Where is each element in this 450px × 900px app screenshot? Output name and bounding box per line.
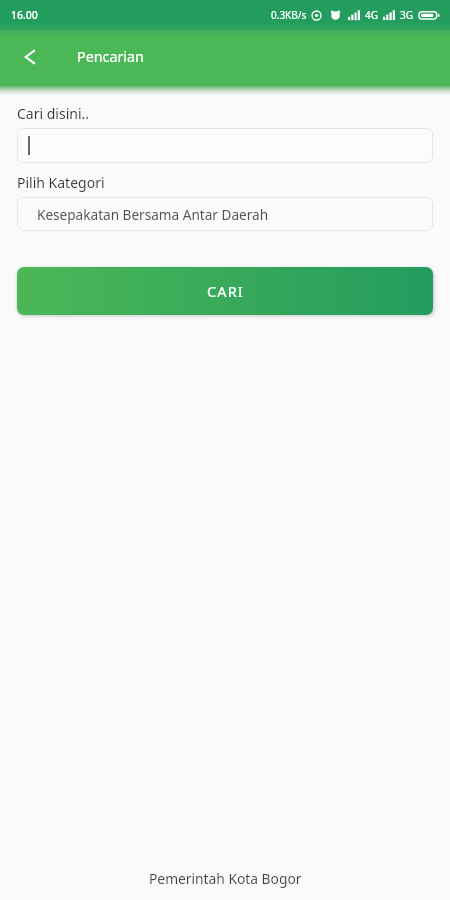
button[interactable]: Kesepakatan Bersama Antar Daerah: [17, 197, 433, 231]
button[interactable]: [17, 128, 433, 163]
staticText: 0.3KB/s: [271, 8, 307, 22]
staticText: CARI: [207, 281, 244, 301]
staticText: Pilih Kategori: [17, 173, 105, 192]
button[interactable]: Back: [8, 35, 52, 79]
staticText: Pemerintah Kota Bogor: [149, 869, 302, 888]
staticText: Kesepakatan Bersama Antar Daerah: [37, 205, 269, 224]
staticText: Cari disini..: [17, 104, 90, 123]
button[interactable]: CARI: [17, 267, 433, 315]
staticText: 16.00: [11, 8, 38, 22]
staticText: 4G: [365, 8, 378, 22]
staticText: 3G: [400, 8, 413, 22]
staticText: Pencarian: [77, 47, 144, 66]
